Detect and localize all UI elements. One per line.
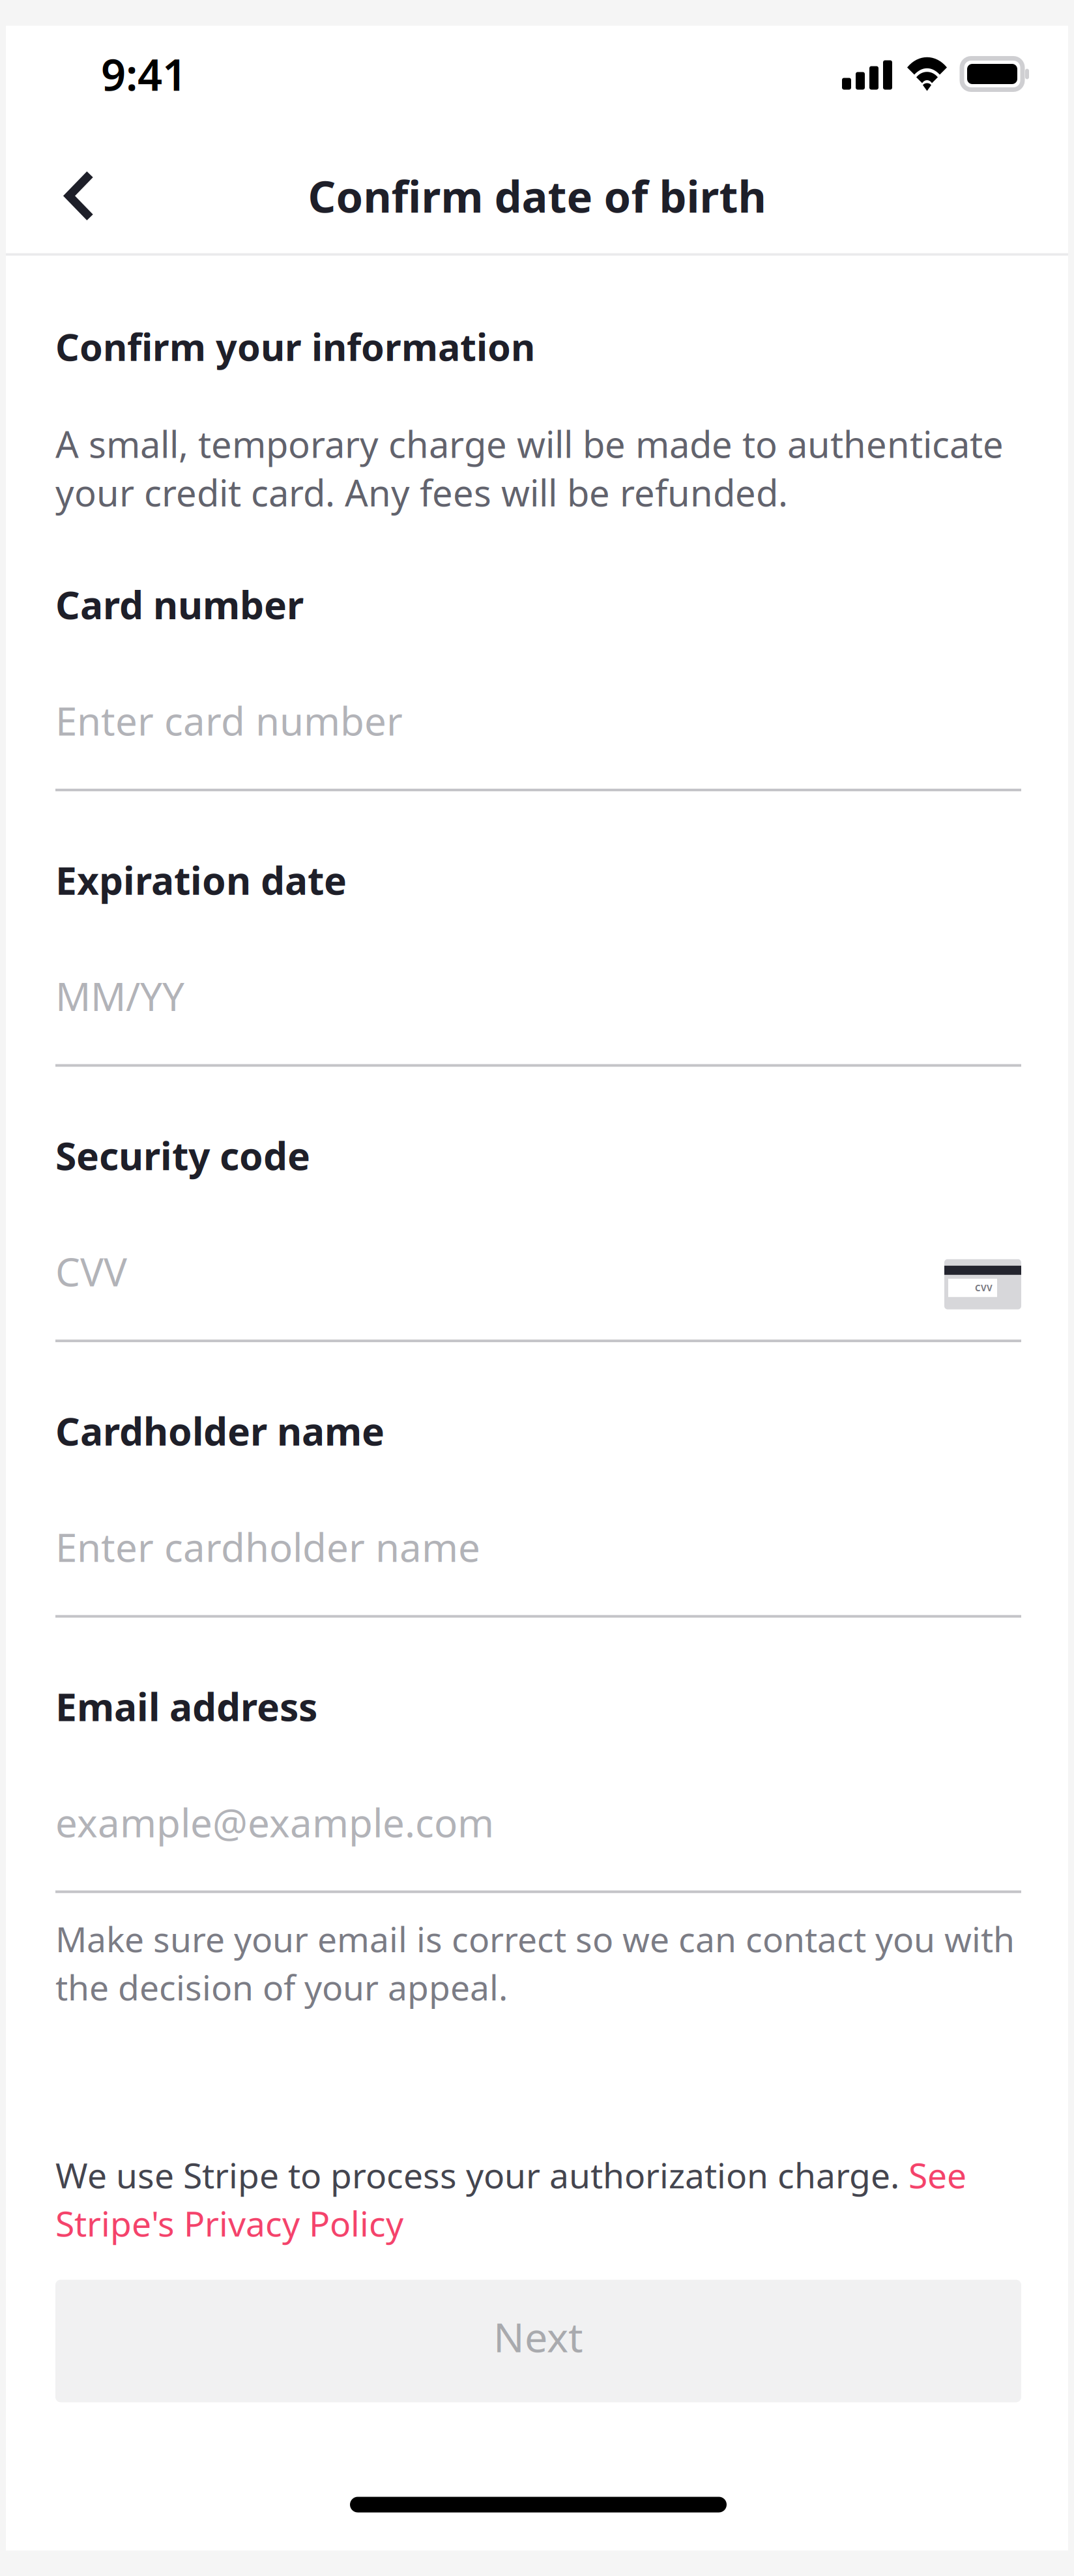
- staticText: Confirm your information: [55, 322, 535, 371]
- staticText: We use Stripe to process your authorizat…: [55, 2152, 908, 2198]
- staticText: Card number: [55, 579, 304, 630]
- staticText: A small, temporary charge will be made t…: [55, 420, 1004, 516]
- staticText: Next: [493, 2309, 583, 2364]
- button[interactable]: Back: [44, 139, 115, 253]
- button[interactable]: We use Stripe to process your authorizat…: [55, 2151, 1021, 2247]
- staticText: Email address: [55, 1681, 317, 1732]
- staticText: Stripe's Privacy Policy: [55, 2200, 403, 2246]
- staticText: See: [908, 2152, 966, 2198]
- staticText: Make sure your email is correct so we ca…: [55, 1916, 1015, 1962]
- staticText: Confirm date of birth: [308, 167, 766, 225]
- staticText: Enter card number: [55, 694, 403, 746]
- staticText: 9:41: [101, 45, 187, 103]
- staticText: CVV: [975, 1282, 993, 1294]
- staticText: Cardholder name: [55, 1405, 385, 1456]
- staticText: MM/YY: [55, 970, 184, 1022]
- staticText: the decision of your appeal.: [55, 1964, 508, 2010]
- staticText: Security code: [55, 1130, 310, 1181]
- staticText: Expiration date: [55, 855, 347, 905]
- staticText: Enter cardholder name: [55, 1521, 480, 1573]
- staticText: example@example.com: [55, 1796, 494, 1848]
- staticText: CVV: [55, 1245, 127, 1297]
- button[interactable]: Next: [55, 2280, 1021, 2402]
